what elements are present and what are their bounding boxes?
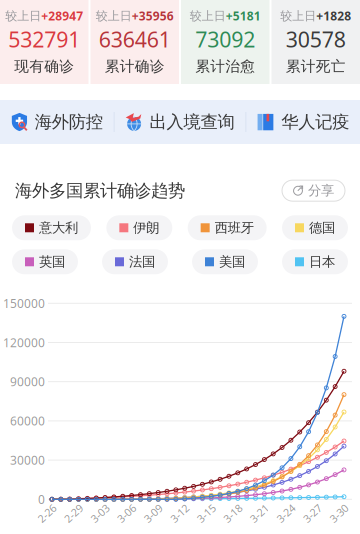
staticText: 海外多国累计确诊趋势: [15, 180, 185, 201]
staticText: 海外防控: [35, 111, 103, 133]
staticText: 现有确诊: [14, 57, 74, 75]
staticText: 3-06: [116, 506, 137, 520]
button[interactable]: 伊朗: [106, 215, 172, 240]
button[interactable]: 海外防控: [11, 100, 103, 144]
staticText: 较上日: [96, 9, 132, 23]
button[interactable]: 分享: [282, 180, 345, 201]
staticText: 3-09: [143, 506, 164, 520]
staticText: 3-15: [196, 506, 217, 520]
staticText: +1828: [316, 8, 351, 24]
staticText: 意大利: [39, 220, 78, 236]
staticText: 150000: [3, 295, 45, 311]
button[interactable]: 英国: [12, 249, 78, 274]
staticText: 90000: [10, 374, 45, 390]
staticText: 较上日: [190, 9, 226, 23]
staticText: 3-12: [169, 506, 190, 520]
staticText: 西班牙: [215, 220, 254, 236]
button[interactable]: 美国: [192, 249, 258, 274]
button[interactable]: 法国: [102, 249, 168, 274]
staticText: 累计确诊: [105, 57, 165, 75]
staticText: 累计死亡: [286, 57, 346, 75]
staticText: 英国: [39, 254, 65, 270]
staticText: +28947: [41, 8, 83, 24]
staticText: 636461: [99, 25, 171, 53]
staticText: 日本: [309, 254, 335, 270]
staticText: 3-30: [328, 506, 349, 520]
staticText: 伊朗: [133, 220, 159, 236]
button[interactable]: 西班牙: [188, 215, 267, 240]
button[interactable]: 意大利: [12, 215, 91, 240]
staticText: 德国: [309, 220, 335, 236]
staticText: 3-24: [275, 506, 296, 520]
staticText: 30000: [10, 452, 45, 468]
staticText: 累计治愈: [195, 57, 255, 75]
button[interactable]: 德国: [282, 215, 348, 240]
staticText: 3-03: [90, 506, 111, 520]
staticText: 2-29: [63, 506, 84, 520]
staticText: 2-26: [36, 506, 57, 520]
staticText: 3-21: [249, 506, 270, 520]
staticText: 法国: [129, 254, 155, 270]
staticText: +5181: [226, 8, 261, 24]
staticText: 3-27: [302, 506, 323, 520]
button[interactable]: 出入境查询: [125, 100, 234, 144]
staticText: 较上日: [5, 9, 41, 23]
staticText: 美国: [219, 254, 245, 270]
staticText: +35956: [132, 8, 174, 24]
staticText: 华人记疫: [281, 111, 349, 133]
staticText: 532791: [8, 25, 80, 53]
staticText: 较上日: [280, 9, 316, 23]
staticText: 3-18: [222, 506, 243, 520]
button[interactable]: 日本: [282, 249, 348, 274]
staticText: 出入境查询: [149, 111, 234, 133]
staticText: 0: [38, 491, 45, 507]
staticText: 分享: [308, 182, 334, 199]
staticText: 60000: [10, 413, 45, 429]
staticText: 73092: [195, 25, 255, 53]
staticText: 120000: [3, 334, 45, 350]
staticText: 30578: [286, 25, 346, 53]
button[interactable]: 华人记疫: [257, 100, 349, 144]
